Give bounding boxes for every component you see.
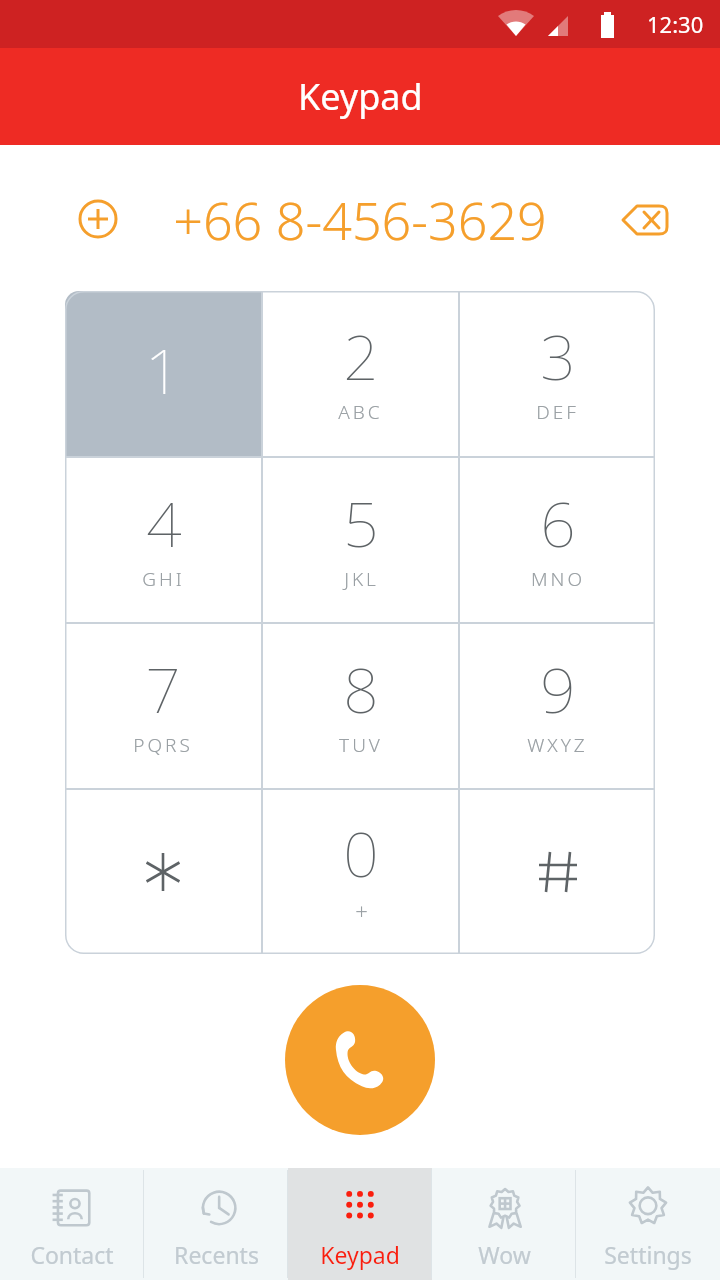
button[interactable]: 0 (263, 790, 458, 954)
staticText: GHI (142, 566, 185, 592)
button[interactable]: Settings (576, 1168, 720, 1280)
staticText: +66 8-456-3629 (173, 184, 547, 255)
button[interactable]: 7 (65, 624, 261, 788)
staticText: Keypad (298, 72, 423, 121)
staticText: 6 (540, 481, 576, 565)
button[interactable]: Contact (0, 1168, 144, 1280)
button[interactable]: Backspace (622, 197, 668, 243)
staticText: PQRS (133, 732, 193, 758)
button[interactable] (65, 790, 261, 954)
staticText: 1 (145, 328, 181, 412)
staticText: DEF (536, 399, 579, 425)
button[interactable]: 2 (263, 291, 458, 456)
button[interactable]: Keypad (288, 1168, 432, 1280)
staticText: Contact (30, 1239, 114, 1270)
staticText: 3 (540, 314, 576, 398)
staticText: Recents (174, 1239, 259, 1270)
staticText: 12:30 (647, 9, 704, 39)
button[interactable] (460, 790, 655, 954)
button[interactable]: 8 (263, 624, 458, 788)
staticText: Wow (478, 1239, 531, 1270)
button[interactable]: 3 (460, 291, 655, 456)
button[interactable]: Recents (144, 1168, 288, 1280)
button[interactable]: 9 (460, 624, 655, 788)
staticText: JKL (344, 566, 379, 592)
staticText: 8 (343, 647, 379, 731)
staticText: 7 (145, 647, 181, 731)
button[interactable]: Add contact (74, 195, 122, 243)
staticText: Settings (604, 1239, 692, 1270)
button[interactable]: 1 (65, 291, 261, 456)
staticText: 4 (146, 481, 182, 565)
staticText: ABC (338, 399, 383, 425)
staticText: 5 (343, 481, 379, 565)
button[interactable]: Wow (432, 1168, 576, 1280)
staticText: MNO (531, 566, 585, 592)
staticText: Keypad (320, 1239, 400, 1270)
button[interactable]: 4 (65, 458, 261, 622)
staticText: TUV (339, 732, 383, 758)
button[interactable]: Call (285, 985, 435, 1135)
staticText: WXYZ (527, 732, 588, 758)
staticText: 0 (343, 811, 379, 895)
staticText: 2 (343, 314, 379, 398)
staticText: 9 (540, 647, 576, 731)
button[interactable]: 6 (460, 458, 655, 622)
button[interactable]: 5 (263, 458, 458, 622)
staticText: + (355, 896, 368, 926)
